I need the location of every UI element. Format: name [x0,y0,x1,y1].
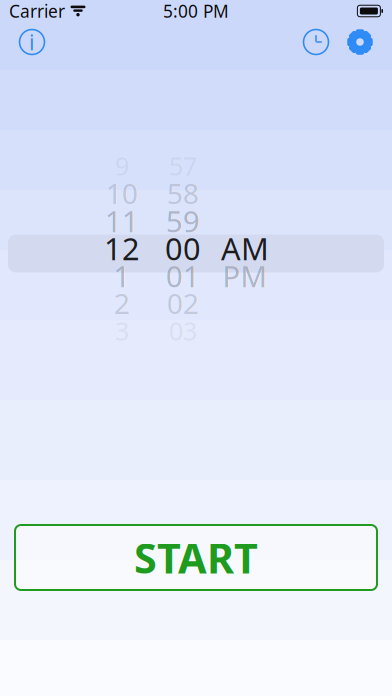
staticText: 2 [114,285,130,322]
staticText: 12 [104,228,140,269]
staticText: PM [222,256,267,295]
staticText: 5:00 PM [163,0,229,22]
staticText: 57 [169,149,197,182]
staticText: 58 [167,175,199,212]
staticText: 3 [115,314,129,347]
staticText: 00 [165,228,201,269]
staticText: 03 [169,314,197,347]
button[interactable]: Info [10,22,54,62]
button[interactable]: START [15,525,377,590]
staticText: Carrier [9,0,65,22]
staticText: AM [221,228,269,269]
staticText: 01 [166,256,200,295]
staticText: START [134,530,258,585]
staticText: 10 [106,175,138,212]
staticText: 1 [113,256,130,295]
button[interactable]: History [294,22,338,62]
staticText: 9 [115,149,129,182]
staticText: 11 [105,201,139,240]
staticText: 59 [166,201,200,240]
button[interactable]: Settings [338,22,382,62]
staticText: i [29,28,35,56]
staticText: 02 [167,285,199,322]
